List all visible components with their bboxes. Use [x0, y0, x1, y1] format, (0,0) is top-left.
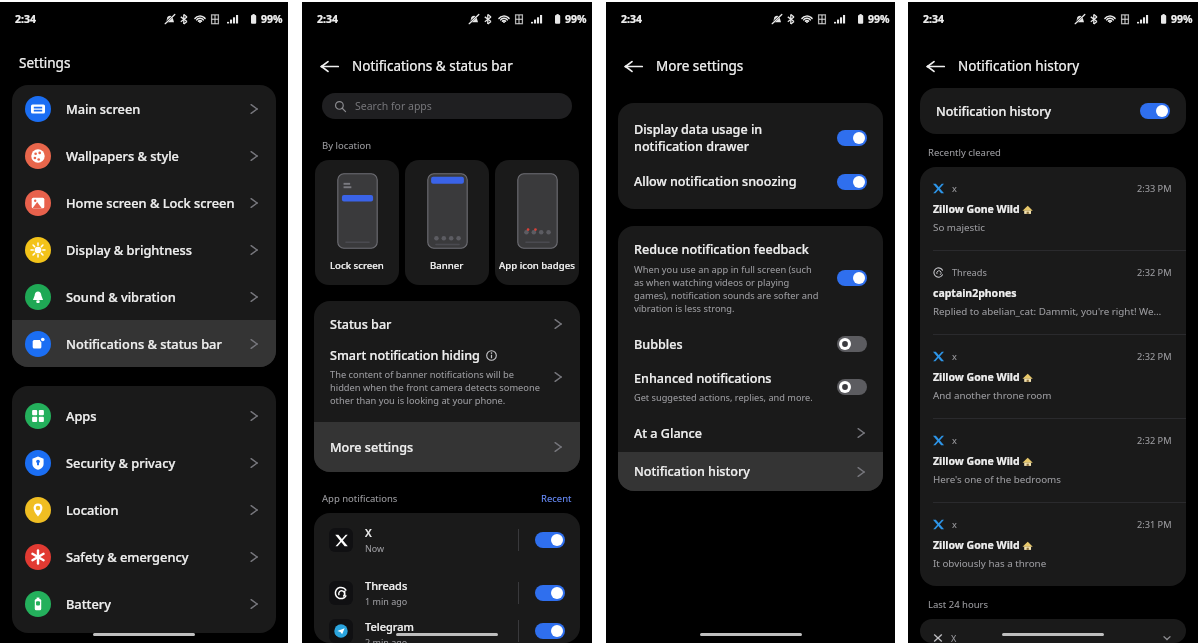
staticText: X	[951, 632, 957, 643]
button[interactable]: Bubbles	[618, 325, 883, 363]
staticText: Security & privacy	[66, 454, 248, 471]
button[interactable]: Threads	[920, 251, 1186, 334]
staticText: x	[952, 518, 957, 531]
staticText: 2:32 PM	[1137, 434, 1172, 447]
button[interactable]: Security & privacy	[12, 439, 276, 486]
staticText: Last 24 hours	[928, 598, 989, 611]
button[interactable]: Sound & vibration	[12, 273, 276, 320]
button[interactable]: Notification history	[618, 452, 883, 491]
button[interactable]: Recent	[541, 492, 572, 505]
button[interactable]: Bubbles	[837, 336, 867, 352]
button[interactable]: Banner	[405, 160, 489, 285]
staticText: Zillow Gone Wild	[933, 454, 1020, 468]
staticText: Wallpapers & style	[66, 147, 248, 164]
button[interactable]: X	[314, 513, 580, 566]
staticText: Threads	[365, 578, 408, 593]
staticText: 2:34	[621, 12, 642, 26]
button[interactable]: x	[920, 503, 1186, 586]
button[interactable]: App icon badges	[495, 160, 579, 285]
button[interactable]: Search for apps	[322, 93, 572, 119]
staticText: Zillow Gone Wild	[933, 538, 1020, 552]
button[interactable]: Back	[316, 53, 342, 79]
button[interactable]: Back	[620, 53, 646, 79]
staticText: 99%	[565, 12, 587, 26]
button[interactable]: Location	[12, 486, 276, 533]
button[interactable]: At a Glance	[618, 414, 883, 452]
staticText: 2:34	[15, 12, 36, 26]
button[interactable]: Notification history	[1140, 103, 1170, 119]
staticText: When you use an app in full screen (such…	[634, 263, 819, 315]
staticText: Banner	[430, 259, 464, 272]
staticText: App icon badges	[499, 259, 575, 272]
staticText: 2:34	[317, 12, 338, 26]
staticText: Smart notification hiding	[330, 347, 480, 364]
staticText: 99%	[868, 12, 890, 26]
button[interactable]: Toggle X notifications	[535, 532, 565, 548]
staticText: Home screen & Lock screen	[66, 194, 248, 211]
staticText: Reduce notification feedback	[634, 241, 809, 258]
button[interactable]: x	[920, 167, 1186, 250]
button[interactable]: Status bar	[314, 301, 580, 347]
button[interactable]: Reduce notification feedback	[837, 270, 867, 286]
button[interactable]: Toggle Telegram notifications	[535, 623, 565, 639]
staticText: Display data usage in notification drawe…	[634, 121, 827, 154]
button[interactable]: Home screen & Lock screen	[12, 179, 276, 226]
button[interactable]: Notification history	[920, 88, 1186, 134]
button[interactable]: Allow notification snoozing	[618, 163, 883, 200]
button[interactable]: Enhanced notifications	[837, 379, 867, 395]
staticText: Get suggested actions, replies, and more…	[634, 391, 813, 404]
staticText: Bubbles	[634, 336, 837, 353]
staticText: Enhanced notifications	[634, 370, 772, 387]
button[interactable]: Safety & emergency	[12, 533, 276, 580]
button[interactable]: x	[920, 419, 1186, 502]
button[interactable]: Threads	[314, 566, 580, 619]
staticText: 99%	[261, 12, 283, 26]
button[interactable]: Display data usage in notification drawe…	[618, 112, 883, 163]
button[interactable]: Display data usage in notification drawe…	[837, 130, 867, 146]
staticText: Lock screen	[330, 259, 384, 272]
other: Expand	[1162, 633, 1172, 643]
staticText: The content of banner notifications will…	[330, 368, 540, 407]
staticText: Telegram	[365, 619, 414, 634]
staticText: Zillow Gone Wild	[933, 202, 1020, 216]
button[interactable]: Wallpapers & style	[12, 132, 276, 179]
staticText: Notification history	[936, 103, 1140, 120]
staticText: Zillow Gone Wild	[933, 370, 1020, 384]
button[interactable]: Allow notification snoozing	[837, 174, 867, 190]
staticText: Status bar	[330, 316, 552, 333]
button[interactable]: Back	[922, 53, 948, 79]
staticText: Sound & vibration	[66, 288, 248, 305]
staticText: By location	[322, 139, 372, 152]
button[interactable]: Notifications & status bar	[12, 320, 276, 367]
button[interactable]: x	[920, 335, 1186, 418]
staticText: x	[952, 350, 957, 363]
staticText: And another throne room	[933, 389, 1052, 402]
staticText: Location	[66, 501, 248, 518]
staticText: Safety & emergency	[66, 548, 248, 565]
button[interactable]: Smart notification hiding	[314, 347, 580, 422]
button[interactable]: Telegram	[314, 619, 580, 643]
staticText: Threads	[952, 266, 987, 279]
button[interactable]: Main screen	[12, 85, 276, 132]
button[interactable]: Display & brightness	[12, 226, 276, 273]
button[interactable]: Toggle Threads notifications	[535, 585, 565, 601]
staticText: Recently cleared	[928, 146, 1001, 159]
button[interactable]: Reduce notification feedback	[618, 226, 883, 325]
staticText: Notification history	[958, 57, 1080, 75]
staticText: Here's one of the bedrooms	[933, 473, 1061, 486]
staticText: App notifications	[322, 492, 541, 505]
staticText: x	[952, 182, 957, 195]
button[interactable]: Apps	[12, 392, 276, 439]
button[interactable]: Lock screen	[315, 160, 399, 285]
staticText: Replied to abelian_cat: Dammit, you're r…	[933, 305, 1162, 318]
button[interactable]: Battery	[12, 580, 276, 627]
staticText: 1 min ago	[365, 595, 408, 607]
button[interactable]: X	[920, 619, 1186, 643]
button[interactable]: Enhanced notifications	[618, 363, 883, 414]
staticText: 2:32 PM	[1137, 266, 1172, 279]
staticText: Settings	[19, 54, 71, 72]
button[interactable]: More settings	[314, 422, 580, 472]
staticText: captain2phones	[933, 286, 1017, 300]
staticText: Notifications & status bar	[352, 57, 513, 75]
staticText: Search for apps	[355, 99, 432, 113]
